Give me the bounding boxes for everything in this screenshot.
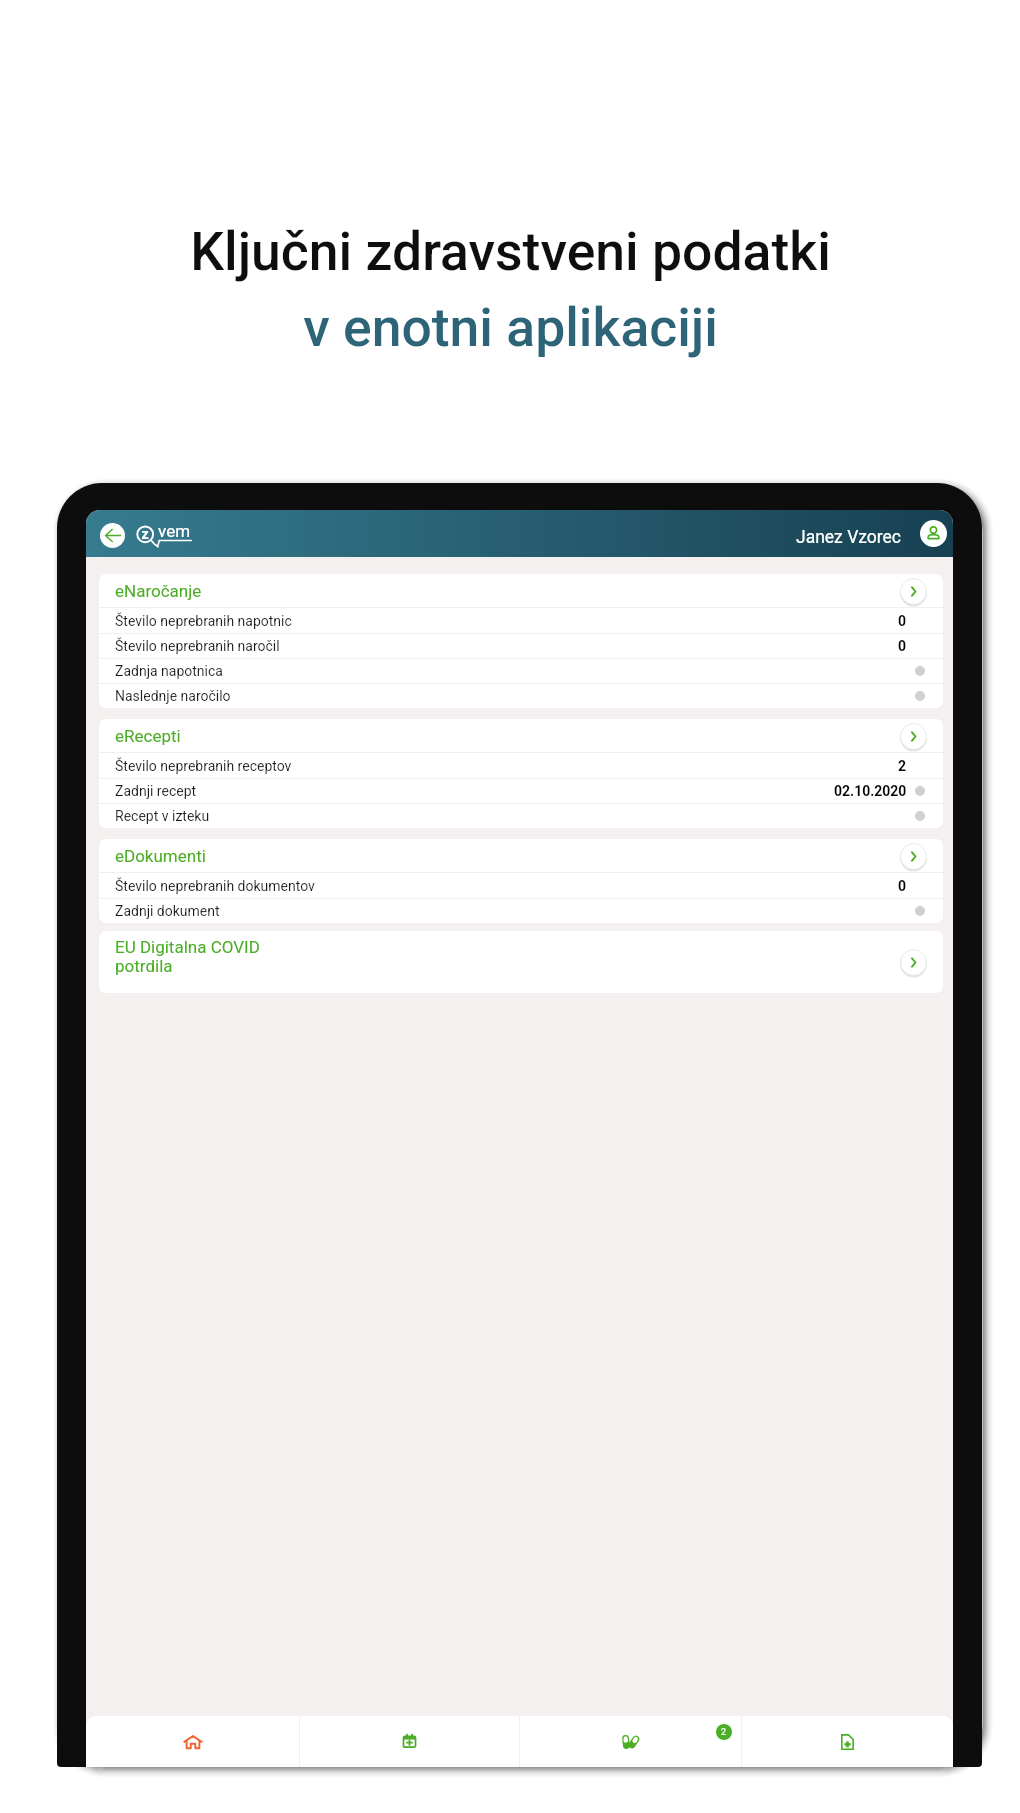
button[interactable]: Open xyxy=(900,843,927,870)
button[interactable]: Število neprebranih naročil xyxy=(99,634,943,658)
button[interactable]: Open xyxy=(900,578,927,605)
button[interactable]: Open xyxy=(900,949,927,976)
staticText: eDokumenti xyxy=(115,846,206,866)
staticText: 2 xyxy=(721,1727,727,1738)
staticText: vem xyxy=(158,521,191,541)
staticText: z xyxy=(139,526,151,542)
staticText: Zadnji dokument xyxy=(115,903,220,919)
button[interactable]: Documents xyxy=(742,1716,953,1767)
staticText: 0 xyxy=(898,613,907,629)
staticText: 0 xyxy=(898,638,907,654)
staticText: Število neprebranih naročil xyxy=(115,638,280,654)
button[interactable]: Zadnji dokument xyxy=(99,899,943,923)
button[interactable]: Zadnja napotnica xyxy=(99,659,943,683)
button[interactable]: Open xyxy=(900,723,927,750)
button[interactable]: Število neprebranih dokumentov xyxy=(99,873,943,898)
staticText: Število neprebranih receptov xyxy=(115,758,292,774)
button[interactable]: Profile xyxy=(920,520,947,547)
button[interactable]: Appointments xyxy=(300,1716,519,1767)
button[interactable]: eRecepti xyxy=(99,719,943,753)
button[interactable]: Prescriptions xyxy=(520,1716,741,1767)
staticText: eNaročanje xyxy=(115,581,202,601)
button[interactable]: Zadnji recept xyxy=(99,779,943,803)
staticText: Recept v izteku xyxy=(115,808,210,824)
staticText: Janez Vzorec xyxy=(796,527,902,548)
button[interactable]: EU Digitalna COVID potrdila xyxy=(99,931,943,993)
staticText: EU Digitalna COVID potrdila xyxy=(115,937,260,976)
button[interactable]: Naslednje naročilo xyxy=(99,684,943,708)
button[interactable]: Home xyxy=(86,1716,299,1767)
staticText: Zadnji recept xyxy=(115,783,197,799)
staticText: v enotni aplikaciji xyxy=(303,296,718,359)
button[interactable]: Število neprebranih receptov xyxy=(99,753,943,778)
staticText: eRecepti xyxy=(115,726,181,746)
staticText: Ključni zdravstveni podatki xyxy=(190,220,831,283)
staticText: Število neprebranih dokumentov xyxy=(115,878,315,894)
staticText: Zadnja napotnica xyxy=(115,663,223,679)
staticText: 02.10.2020 xyxy=(834,783,907,799)
button[interactable]: Recept v izteku xyxy=(99,804,943,828)
staticText: Število neprebranih napotnic xyxy=(115,613,292,629)
staticText: 0 xyxy=(898,878,907,894)
button[interactable]: Število neprebranih napotnic xyxy=(99,608,943,633)
button[interactable]: eNaročanje xyxy=(99,574,943,608)
staticText: Naslednje naročilo xyxy=(115,688,231,704)
staticText: 2 xyxy=(898,758,907,774)
button[interactable]: eDokumenti xyxy=(99,839,943,873)
button[interactable]: Back xyxy=(100,523,125,548)
